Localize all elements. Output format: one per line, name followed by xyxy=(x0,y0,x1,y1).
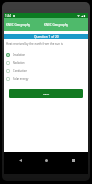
staticText: KNEC Geography xyxy=(6,23,31,27)
staticText: NEXT xyxy=(43,92,49,95)
button[interactable]: Back xyxy=(9,152,31,168)
staticText: Insolation xyxy=(13,53,26,57)
staticText: 1:34 xyxy=(5,14,11,18)
staticText: Solar energy xyxy=(13,77,29,81)
button[interactable]: KNEC Geography xyxy=(4,18,88,31)
staticText: Question 1 of 20 xyxy=(34,35,59,39)
button[interactable]: Insolation xyxy=(4,51,88,59)
staticText: Conduction xyxy=(13,69,28,73)
button[interactable]: Radiation xyxy=(4,59,88,67)
staticText: Heat received by the earth from the sun … xyxy=(6,42,63,46)
button[interactable]: Conduction xyxy=(4,67,88,75)
button[interactable]: Recent apps xyxy=(62,152,84,168)
staticText: KNEC Geography xyxy=(44,23,69,27)
button[interactable]: NEXT xyxy=(9,89,83,98)
button[interactable]: Solar energy xyxy=(4,75,88,83)
staticText: Radiation xyxy=(13,61,25,65)
button[interactable]: Home xyxy=(35,152,57,168)
